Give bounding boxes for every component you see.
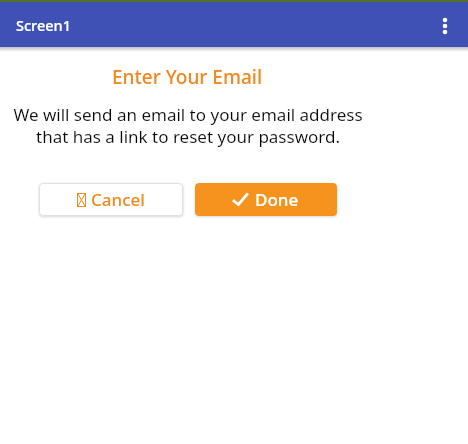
staticText: Done xyxy=(255,188,299,211)
staticText: Enter Your Email xyxy=(112,64,263,90)
button[interactable] xyxy=(433,13,457,37)
button[interactable]: Cancel xyxy=(39,183,183,216)
staticText: We will send an email to your email addr… xyxy=(13,103,363,148)
staticText: Screen1 xyxy=(16,15,71,35)
staticText: Cancel xyxy=(91,188,145,211)
button[interactable]: Done xyxy=(195,183,337,216)
